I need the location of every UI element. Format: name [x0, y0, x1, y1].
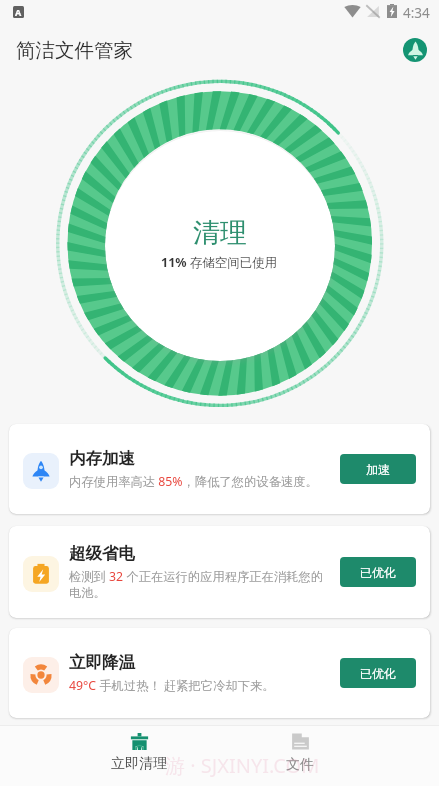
- button[interactable]: 立即降温: [9, 628, 430, 718]
- button[interactable]: 已优化: [340, 658, 416, 688]
- staticText: 文件: [286, 756, 314, 774]
- staticText: 已优化: [360, 565, 396, 580]
- staticText: 清理: [193, 216, 247, 250]
- staticText: 超级省电: [69, 543, 135, 564]
- staticText: 内存加速: [69, 448, 135, 469]
- staticText: 内存使用率高达 85%，降低了您的设备速度。: [69, 473, 318, 490]
- button[interactable]: 文件: [250, 725, 350, 786]
- button[interactable]: 已优化: [340, 557, 416, 587]
- staticText: 49°C 手机过热！ 赶紧把它冷却下来。: [69, 677, 275, 694]
- staticText: 4:34: [403, 4, 430, 22]
- button[interactable]: 立即清理: [89, 725, 189, 786]
- staticText: 立即降温: [69, 652, 135, 673]
- staticText: 简洁文件管家: [16, 38, 133, 63]
- staticText: 加速: [366, 462, 390, 477]
- staticText: 11% 存储空间已使用: [161, 254, 278, 271]
- staticText: A: [15, 6, 22, 18]
- button[interactable]: 加速: [340, 454, 416, 484]
- staticText: 立即清理: [111, 755, 167, 773]
- staticText: 游 · SJXINYI.COM: [165, 752, 320, 779]
- staticText: 已优化: [360, 666, 396, 681]
- button[interactable]: Boost: [403, 38, 427, 62]
- button[interactable]: 内存加速: [9, 424, 430, 514]
- staticText: 检测到 32 个正在运行的应用程序正在消耗您的电池。: [69, 568, 332, 601]
- button[interactable]: 超级省电: [9, 526, 430, 618]
